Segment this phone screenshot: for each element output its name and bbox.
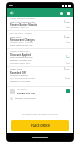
staticText: BILL DETAILS · 4 items bbox=[10, 32, 70, 35]
staticText: Restaurant Charges bbox=[10, 38, 70, 41]
staticText: ₹615 bbox=[65, 77, 70, 80]
staticText: Delivery instructions bbox=[15, 97, 69, 100]
staticText: Incl. all taxes and charges bbox=[10, 77, 65, 80]
button[interactable]: More options bbox=[65, 10, 71, 16]
staticText: Discount Applied bbox=[10, 53, 70, 56]
staticText: ₹40 bbox=[66, 41, 70, 44]
staticText: OFFERS & BENEFITS bbox=[10, 50, 70, 53]
staticText: Rounded Off bbox=[10, 71, 70, 74]
staticText: Amount Payable bbox=[10, 74, 70, 77]
staticText: Govt Taxes & GST 5% bbox=[10, 44, 70, 47]
staticText: FOOD Delivery Summary bbox=[10, 17, 70, 20]
staticText: ₹538 bbox=[64, 35, 70, 38]
staticText: Tip helps riders earn bbox=[10, 62, 66, 65]
button[interactable]: Help bbox=[58, 10, 64, 16]
staticText: ₹249 bbox=[64, 20, 70, 23]
staticText: By placing order you agree to our T&C bbox=[11, 113, 69, 116]
button[interactable]: Delivery instructions bbox=[7, 95, 73, 101]
staticText: Item Total bbox=[10, 35, 64, 38]
staticText: -₹50 bbox=[65, 56, 70, 59]
staticText: ₹615 bbox=[64, 68, 70, 71]
staticText: Order Total bbox=[10, 68, 64, 71]
staticText: PLACE ORDER bbox=[31, 124, 50, 128]
button[interactable]: Back bbox=[9, 10, 15, 16]
button[interactable]: PAY USING bbox=[7, 87, 73, 95]
staticText: Veg Thali Combo Meal bbox=[10, 20, 64, 23]
staticText: › bbox=[69, 97, 70, 100]
staticText: 9:41 bbox=[9, 4, 14, 7]
staticText: Tandoori Naan x 2 bbox=[10, 26, 66, 29]
staticText: ₹90 bbox=[66, 26, 70, 29]
staticText: Delivery in 32 mins bbox=[10, 80, 70, 83]
staticText: Paneer Butter Masala bbox=[10, 23, 70, 26]
button[interactable]: PLACE ORDER bbox=[11, 120, 69, 131]
staticText: PAY USING bbox=[17, 88, 27, 91]
staticText: Delivery Fee | 3.2 kms bbox=[10, 41, 66, 44]
staticText: ₹20 bbox=[66, 62, 70, 65]
staticText: WELCOME50 coupon bbox=[10, 56, 65, 59]
staticText: Delivery Partner Tip bbox=[10, 59, 70, 62]
staticText: Google Pay UPI bbox=[17, 91, 36, 94]
